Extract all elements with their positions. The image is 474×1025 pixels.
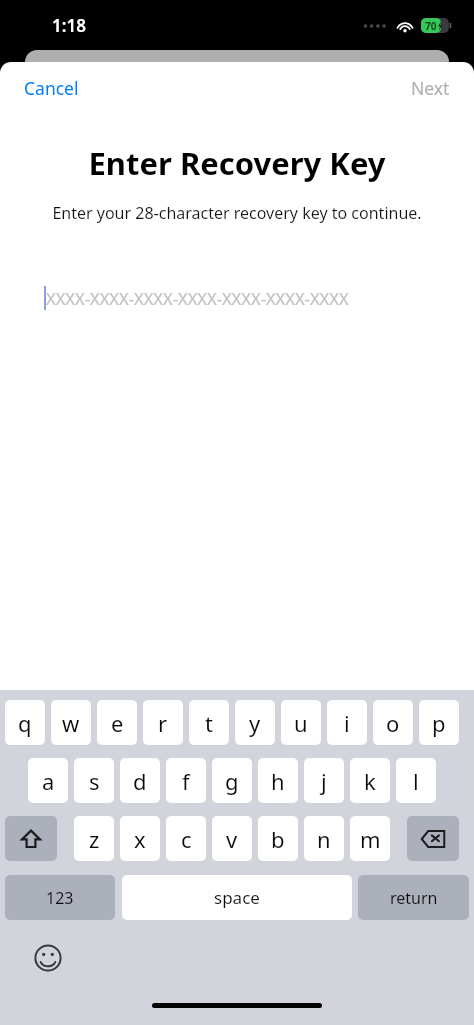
- button[interactable]: t: [189, 700, 229, 745]
- button[interactable]: q: [5, 700, 45, 745]
- button[interactable]: z: [74, 816, 114, 861]
- staticText: m: [360, 824, 381, 854]
- button[interactable]: x: [120, 816, 160, 861]
- staticText: return: [390, 887, 438, 909]
- button[interactable]: l: [396, 758, 436, 803]
- staticText: h: [271, 766, 285, 796]
- staticText: q: [18, 708, 32, 738]
- staticText: x: [134, 824, 146, 854]
- staticText: c: [181, 824, 192, 854]
- button[interactable]: XXXX-XXXX-XXXX-XXXX-XXXX-XXXX-XXXX: [0, 278, 474, 318]
- button[interactable]: f: [166, 758, 206, 803]
- staticText: u: [294, 708, 308, 738]
- staticText: 1:18: [52, 14, 86, 37]
- staticText: o: [386, 708, 400, 738]
- button[interactable]: Shift: [5, 816, 57, 861]
- staticText: Cancel: [24, 76, 79, 100]
- staticText: r: [158, 708, 168, 738]
- button[interactable]: e: [97, 700, 137, 745]
- button[interactable]: y: [235, 700, 275, 745]
- button[interactable]: 123: [5, 875, 115, 920]
- button[interactable]: b: [258, 816, 298, 861]
- staticText: Enter Recovery Key: [16, 142, 458, 184]
- button[interactable]: i: [327, 700, 367, 745]
- button[interactable]: k: [350, 758, 390, 803]
- staticText: s: [89, 766, 100, 796]
- staticText: i: [344, 708, 350, 738]
- button[interactable]: n: [304, 816, 344, 861]
- button[interactable]: u: [281, 700, 321, 745]
- staticText: XXXX-XXXX-XXXX-XXXX-XXXX-XXXX-XXXX: [46, 287, 349, 309]
- button[interactable]: return: [358, 875, 469, 920]
- button[interactable]: g: [212, 758, 252, 803]
- staticText: d: [133, 766, 147, 796]
- staticText: j: [321, 766, 327, 796]
- button[interactable]: space: [122, 875, 352, 920]
- staticText: b: [271, 824, 285, 854]
- staticText: f: [182, 766, 190, 796]
- button[interactable]: h: [258, 758, 298, 803]
- staticText: 123: [46, 887, 74, 909]
- staticText: z: [89, 824, 100, 854]
- staticText: y: [249, 708, 261, 738]
- staticText: v: [226, 824, 238, 854]
- staticText: t: [205, 708, 213, 738]
- staticText: Enter your 28-character recovery key to …: [20, 202, 454, 224]
- staticText: k: [364, 766, 376, 796]
- button[interactable]: r: [143, 700, 183, 745]
- button[interactable]: Backspace: [407, 816, 459, 861]
- button[interactable]: Emoji keyboard: [30, 940, 66, 976]
- button[interactable]: m: [350, 816, 390, 861]
- staticText: space: [214, 886, 260, 909]
- staticText: Next: [411, 76, 450, 100]
- staticText: g: [225, 766, 239, 796]
- button[interactable]: j: [304, 758, 344, 803]
- button[interactable]: Cancel: [14, 70, 89, 106]
- button[interactable]: c: [166, 816, 206, 861]
- button[interactable]: v: [212, 816, 252, 861]
- staticText: p: [432, 708, 446, 738]
- button[interactable]: Next: [401, 70, 460, 106]
- staticText: l: [413, 766, 419, 796]
- button[interactable]: d: [120, 758, 160, 803]
- button[interactable]: a: [28, 758, 68, 803]
- staticText: a: [42, 766, 55, 796]
- button[interactable]: p: [419, 700, 459, 745]
- button[interactable]: o: [373, 700, 413, 745]
- staticText: n: [317, 824, 331, 854]
- button[interactable]: s: [74, 758, 114, 803]
- staticText: w: [62, 708, 80, 738]
- staticText: e: [111, 708, 124, 738]
- staticText: 70: [425, 19, 437, 33]
- button[interactable]: w: [51, 700, 91, 745]
